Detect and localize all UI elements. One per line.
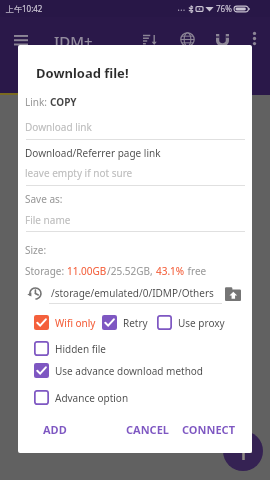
button[interactable]: Use advance download method: [32, 361, 206, 380]
button[interactable]: Wifi only: [32, 313, 98, 332]
staticText: Advance option: [55, 391, 129, 405]
button[interactable]: More options: [245, 29, 263, 47]
button[interactable]: Recent folders: [25, 284, 43, 302]
staticText: 76%: [216, 3, 232, 14]
button[interactable]: Hidden file: [32, 339, 108, 358]
staticText: Hidden file: [55, 342, 106, 356]
button[interactable]: Browser: [177, 29, 197, 49]
staticText: COPY: [50, 95, 77, 109]
staticText: IDM+: [54, 31, 93, 51]
staticText: CANCEL: [126, 422, 169, 437]
staticText: 上午10:42: [6, 3, 43, 14]
staticText: Use proxy: [178, 316, 225, 330]
staticText: ADD: [43, 422, 67, 437]
staticText: Download link: [25, 120, 92, 134]
button[interactable]: Advance option: [32, 388, 131, 407]
staticText: CONNECT: [182, 422, 235, 437]
staticText: Use advance download method: [55, 364, 204, 378]
staticText: 11.00GB: [67, 264, 107, 278]
staticText: Size:: [25, 243, 47, 257]
staticText: Download/Referrer page link: [25, 146, 161, 160]
staticText: Retry: [123, 316, 148, 330]
button[interactable]: Magnet link: [212, 29, 232, 49]
staticText: Wifi only: [55, 316, 96, 330]
button[interactable]: ADD: [38, 418, 72, 441]
staticText: Save as:: [25, 192, 63, 206]
staticText: Download file!: [36, 64, 129, 82]
button[interactable]: Menu: [10, 29, 32, 51]
button[interactable]: Add download: [223, 431, 263, 471]
staticText: free: [185, 264, 207, 278]
staticText: 43.1%: [156, 264, 185, 278]
button[interactable]: Choose folder: [224, 285, 242, 303]
button[interactable]: Sort: [140, 29, 160, 49]
button[interactable]: Retry: [100, 313, 150, 332]
button[interactable]: CANCEL: [121, 418, 174, 441]
staticText: Storage:: [25, 264, 67, 278]
staticText: File name: [25, 213, 71, 227]
staticText: leave empty if not sure: [25, 166, 133, 180]
staticText: Link:: [25, 95, 50, 109]
button[interactable]: CONNECT: [177, 418, 240, 441]
staticText: /25.52GB,: [107, 264, 156, 278]
button[interactable]: Use proxy: [155, 313, 227, 332]
staticText: /storage/emulated/0/IDMP/Others: [51, 286, 214, 300]
